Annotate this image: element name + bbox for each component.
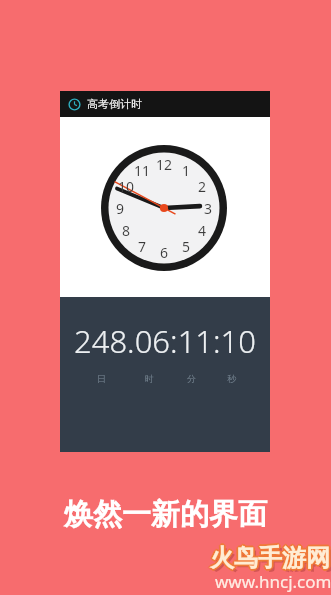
staticText: 分	[187, 373, 196, 384]
staticText: 7	[138, 237, 147, 256]
staticText: 3	[204, 199, 213, 218]
staticText: 火鸟手游网	[210, 541, 330, 571]
staticText: 6	[160, 243, 169, 262]
staticText: 火鸟手游网	[208, 543, 328, 573]
staticText: 高考倒计时	[87, 97, 142, 111]
staticText: 时	[145, 373, 154, 384]
staticText: 5	[182, 237, 191, 256]
staticText: 11	[134, 161, 151, 180]
staticText: 火鸟手游网	[210, 545, 330, 575]
staticText: www.hncj.com	[215, 570, 331, 593]
staticText: 248.06:11:10	[74, 320, 257, 362]
staticText: 1	[182, 161, 191, 180]
staticText: 10	[118, 177, 135, 196]
staticText: 9	[116, 199, 125, 218]
button[interactable]: 高考倒计时	[60, 91, 270, 117]
staticText: 2	[198, 177, 207, 196]
staticText: 焕然一新的界面	[64, 496, 267, 533]
staticText: 火鸟手游网	[210, 543, 330, 573]
staticText: 4	[198, 221, 207, 240]
button[interactable]: 248.06:11:10	[60, 297, 270, 452]
staticText: 日	[97, 373, 106, 384]
staticText: 12	[156, 155, 173, 174]
staticText: 火鸟手游网	[209, 542, 329, 572]
staticText: 火鸟手游网	[212, 543, 331, 573]
staticText: 8	[122, 221, 131, 240]
staticText: 秒	[227, 373, 236, 384]
staticText: 火鸟手游网	[213, 546, 331, 576]
staticText: 火鸟手游网	[211, 542, 331, 572]
staticText: 火鸟手游网	[211, 544, 331, 574]
staticText: 火鸟手游网	[209, 544, 329, 574]
